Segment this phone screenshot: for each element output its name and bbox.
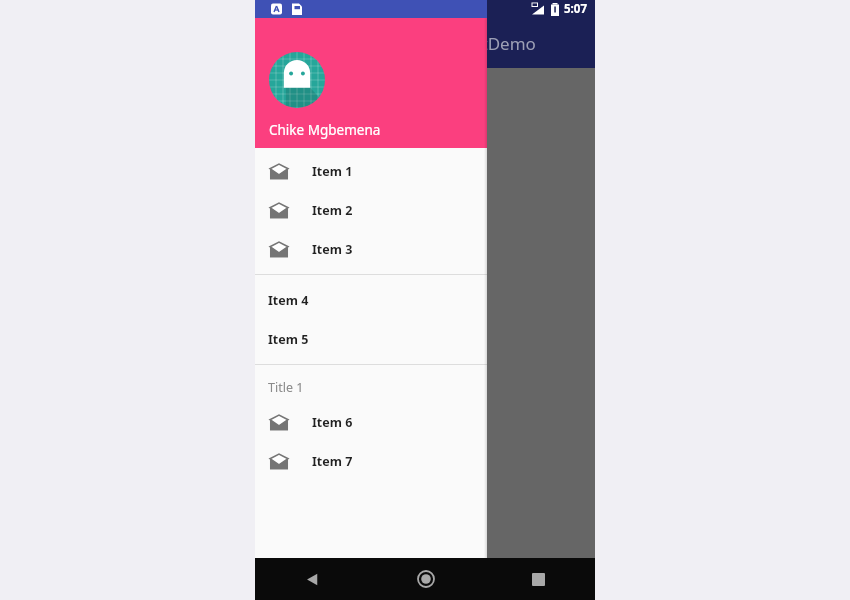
button[interactable]: Recent apps xyxy=(482,558,595,600)
button[interactable]: Item 4 xyxy=(255,281,487,320)
staticText: utDemo xyxy=(471,32,536,55)
button[interactable]: Chike Mgbemena xyxy=(255,18,487,148)
staticText: Chike Mgbemena xyxy=(269,121,381,139)
button[interactable]: Item 1 xyxy=(255,152,487,191)
button[interactable]: Item 6 xyxy=(255,403,487,442)
staticText: Item 5 xyxy=(268,331,309,348)
staticText: Item 7 xyxy=(312,453,353,470)
staticText: Item 4 xyxy=(268,292,309,309)
button[interactable]: Item 7 xyxy=(255,442,487,481)
button[interactable]: Back xyxy=(255,558,369,600)
staticText: Item 2 xyxy=(312,202,353,219)
button[interactable]: Item 2 xyxy=(255,191,487,230)
button[interactable]: Home xyxy=(369,558,482,600)
staticText: Item 1 xyxy=(312,163,353,180)
staticText: 5:07 xyxy=(564,1,587,17)
button[interactable]: Item 5 xyxy=(255,320,487,359)
staticText: Item 3 xyxy=(312,241,353,258)
button[interactable]: Item 3 xyxy=(255,230,487,269)
staticText: Item 6 xyxy=(312,414,353,431)
staticText: Title 1 xyxy=(268,379,304,396)
